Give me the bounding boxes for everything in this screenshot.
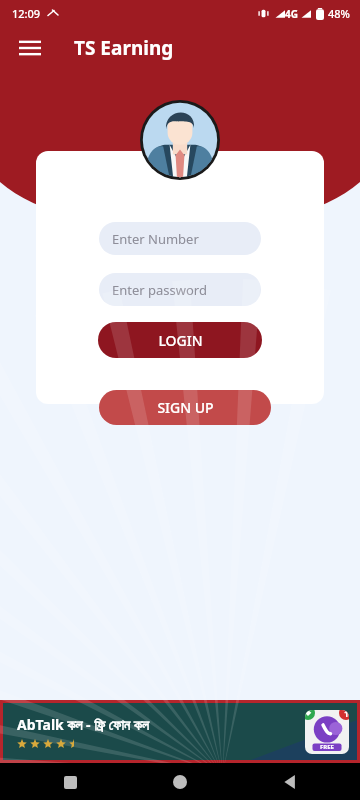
button[interactable]: Home bbox=[166, 768, 194, 796]
staticText: Enter password bbox=[112, 281, 207, 299]
staticText: TS Earning bbox=[74, 35, 174, 61]
button[interactable]: SIGN UP bbox=[99, 390, 271, 425]
button[interactable]: Recent apps bbox=[56, 768, 84, 796]
staticText: SIGN UP bbox=[157, 398, 214, 417]
staticText: LOGIN bbox=[158, 331, 203, 350]
button[interactable]: LOGIN bbox=[98, 322, 262, 358]
staticText: FREE bbox=[320, 743, 334, 751]
button[interactable]: Enter Number bbox=[99, 222, 261, 255]
staticText: 1 bbox=[344, 710, 349, 719]
button[interactable]: Enter password bbox=[99, 273, 261, 306]
button[interactable]: Back bbox=[276, 768, 304, 796]
staticText: 4G bbox=[285, 7, 298, 21]
button[interactable]: Open navigation menu bbox=[14, 32, 46, 64]
staticText: Enter Number bbox=[112, 230, 199, 248]
staticText: 48% bbox=[328, 6, 350, 21]
button[interactable]: AbTalk app bbox=[305, 710, 349, 754]
staticText: 12:09 bbox=[12, 6, 41, 21]
staticText: AbTalk কল - ফ্রি ফোন কল bbox=[17, 715, 149, 734]
